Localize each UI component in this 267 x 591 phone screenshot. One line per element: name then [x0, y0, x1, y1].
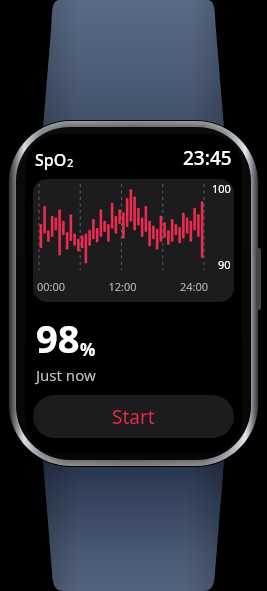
- staticText: 24:00: [151, 279, 208, 294]
- staticText: 12:00: [94, 279, 151, 294]
- button[interactable]: 100: [33, 179, 234, 302]
- staticText: 98: [36, 312, 80, 364]
- staticText: SpO: [35, 149, 67, 171]
- staticText: Start: [112, 404, 155, 430]
- staticText: 23:45: [183, 145, 232, 171]
- staticText: 00:00: [37, 279, 94, 294]
- staticText: 100: [212, 181, 231, 196]
- staticText: 90: [218, 257, 231, 272]
- staticText: Just now: [36, 365, 96, 385]
- staticText: %: [80, 338, 96, 361]
- staticText: 2: [67, 155, 74, 170]
- button[interactable]: Start measurement: [33, 395, 234, 438]
